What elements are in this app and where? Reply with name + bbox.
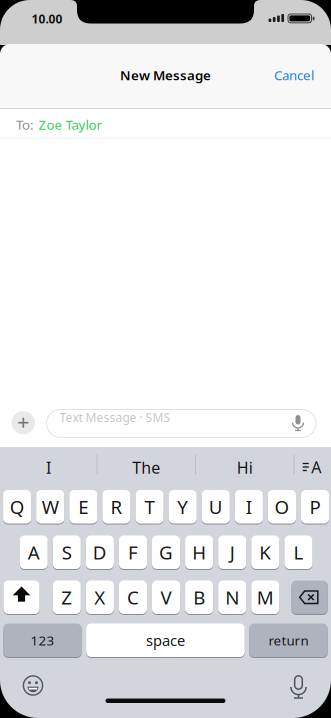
button[interactable]: D <box>86 535 114 569</box>
button[interactable]: Q <box>3 490 31 523</box>
button[interactable]: Zoe Taylor <box>38 116 102 133</box>
button[interactable]: Dictation <box>289 675 307 699</box>
staticText: W <box>42 494 59 519</box>
button[interactable]: E <box>69 490 97 523</box>
staticText: Cancel <box>274 66 314 84</box>
staticText: E <box>78 494 88 519</box>
button[interactable]: Text Message · SMS <box>46 409 316 437</box>
button[interactable]: Apps <box>12 411 35 434</box>
staticText: New Message <box>120 66 211 84</box>
staticText: T <box>145 494 155 519</box>
staticText: D <box>93 540 107 565</box>
staticText: H <box>192 540 206 565</box>
staticText: Q <box>10 494 25 519</box>
staticText: V <box>161 585 172 610</box>
button[interactable]: A <box>20 535 48 569</box>
staticText: To: <box>16 116 34 133</box>
staticText: 123 <box>30 631 54 649</box>
staticText: K <box>259 540 271 565</box>
button[interactable]: J <box>218 535 246 569</box>
staticText: return <box>268 631 308 649</box>
button[interactable]: N <box>218 580 246 614</box>
staticText: S <box>62 540 72 565</box>
staticText: 10.00 <box>31 11 62 27</box>
button[interactable]: T <box>135 490 164 523</box>
button[interactable]: C <box>119 580 147 614</box>
button[interactable]: R <box>102 490 130 523</box>
button[interactable]: S <box>53 535 81 569</box>
button[interactable]: Y <box>169 490 197 523</box>
staticText: L <box>293 540 303 565</box>
button[interactable]: O <box>268 490 296 523</box>
button[interactable]: U <box>202 490 230 523</box>
staticText: Zoe Taylor <box>38 116 102 133</box>
staticText: C <box>127 585 139 610</box>
button[interactable]: W <box>36 490 64 523</box>
button[interactable]: 123 <box>3 623 82 657</box>
button[interactable]: P <box>301 490 329 523</box>
button[interactable]: Hi <box>198 450 292 484</box>
staticText: J <box>230 540 235 565</box>
staticText: I <box>46 457 51 478</box>
staticText: N <box>225 585 239 610</box>
staticText: X <box>94 585 105 610</box>
button[interactable]: Predictive <box>295 450 329 484</box>
button[interactable]: Emoji <box>23 675 43 695</box>
button[interactable]: Z <box>53 580 81 614</box>
staticText: space <box>146 630 185 650</box>
staticText: G <box>159 540 173 565</box>
button[interactable]: V <box>152 580 180 614</box>
button[interactable]: Cancel <box>274 66 314 84</box>
button[interactable]: F <box>119 535 147 569</box>
staticText: Z <box>61 585 72 610</box>
staticText: A <box>28 540 40 565</box>
button[interactable]: Delete <box>291 580 328 614</box>
staticText: M <box>257 585 274 610</box>
staticText: Y <box>177 494 188 519</box>
staticText: I <box>246 494 252 519</box>
button[interactable]: B <box>185 580 213 614</box>
button[interactable]: return <box>249 623 328 657</box>
staticText: U <box>209 494 223 519</box>
button[interactable]: space <box>86 623 245 657</box>
staticText: Hi <box>237 457 253 478</box>
button[interactable]: Shift <box>3 580 39 614</box>
button[interactable]: K <box>251 535 279 569</box>
button[interactable]: H <box>185 535 213 569</box>
staticText: P <box>310 494 321 519</box>
staticText: F <box>128 540 138 565</box>
button[interactable]: The <box>99 450 193 484</box>
button[interactable]: L <box>284 535 312 569</box>
button[interactable]: I <box>1 450 95 484</box>
staticText: B <box>193 585 205 610</box>
staticText: The <box>132 457 160 478</box>
staticText: Text Message · SMS <box>59 409 170 425</box>
button[interactable]: Dictate <box>290 414 306 432</box>
staticText: A <box>311 456 321 478</box>
button[interactable]: M <box>251 580 279 614</box>
staticText: R <box>110 494 122 519</box>
button[interactable]: X <box>86 580 114 614</box>
button[interactable]: G <box>152 535 180 569</box>
staticText: O <box>274 494 289 519</box>
button[interactable]: I <box>235 490 263 523</box>
